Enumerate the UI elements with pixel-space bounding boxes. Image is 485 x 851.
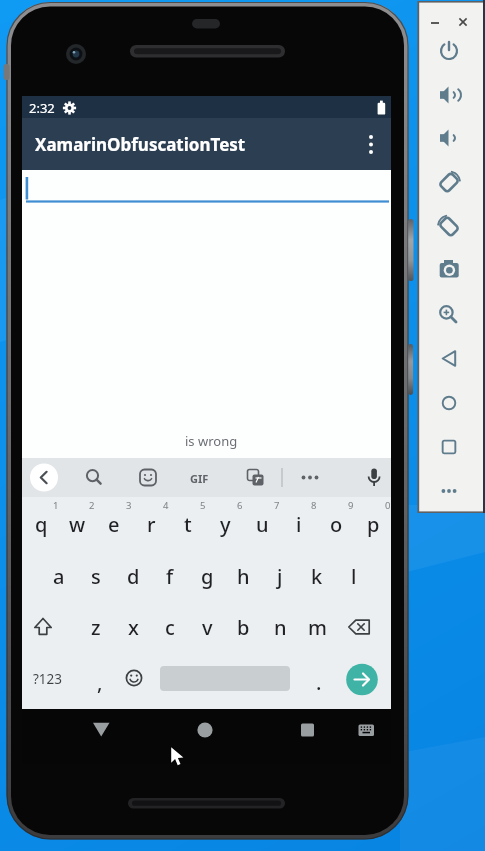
staticText: o (330, 511, 343, 538)
staticText: f (166, 563, 174, 590)
staticText: 2 (89, 499, 95, 512)
button[interactable]: w (59, 498, 95, 550)
staticText: q (35, 511, 48, 538)
button[interactable]: u (244, 498, 280, 550)
button[interactable]: y (207, 498, 243, 550)
staticText: u (256, 511, 269, 538)
button[interactable]: r (133, 498, 169, 550)
button[interactable] (345, 601, 378, 653)
button[interactable]: i (281, 498, 317, 550)
button[interactable] (118, 653, 150, 703)
button[interactable] (27, 601, 59, 653)
button[interactable] (433, 122, 465, 154)
staticText: t (184, 511, 192, 538)
button[interactable] (433, 431, 465, 463)
button[interactable]: g (189, 550, 225, 602)
staticText: r (147, 511, 156, 538)
button[interactable]: . (301, 656, 337, 708)
button[interactable]: e (96, 498, 132, 550)
button[interactable] (134, 463, 162, 491)
button[interactable]: k (299, 550, 335, 602)
button[interactable] (433, 167, 465, 199)
staticText: 9 (348, 499, 354, 512)
staticText: 4 (163, 499, 169, 512)
staticText: g (201, 563, 214, 590)
button[interactable]: t (170, 498, 206, 550)
button[interactable]: j (262, 550, 298, 602)
button[interactable] (80, 463, 108, 491)
staticText: GIF (190, 471, 209, 486)
staticText: l (351, 563, 357, 590)
button[interactable] (241, 463, 269, 491)
button[interactable] (433, 387, 465, 419)
button[interactable]: v (189, 601, 225, 653)
staticText: m (308, 614, 327, 641)
staticText: . (316, 669, 322, 696)
button[interactable] (427, 15, 443, 31)
button[interactable] (296, 463, 324, 491)
staticText: z (91, 614, 101, 641)
button[interactable] (433, 475, 465, 507)
button[interactable] (186, 463, 214, 491)
button[interactable]: s (78, 550, 114, 602)
staticText: ?123 (33, 670, 63, 688)
staticText: 1 (53, 499, 59, 512)
button[interactable] (344, 708, 388, 752)
button[interactable]: q (23, 498, 59, 550)
button[interactable] (433, 79, 465, 111)
button[interactable] (160, 653, 290, 703)
staticText: p (367, 511, 380, 538)
button[interactable] (433, 297, 465, 329)
staticText: h (237, 563, 250, 590)
button[interactable] (79, 708, 123, 752)
staticText: j (277, 563, 283, 590)
button[interactable]: n (262, 601, 298, 653)
button[interactable]: m (299, 601, 335, 653)
staticText: a (53, 563, 65, 590)
staticText: 6 (237, 499, 243, 512)
button[interactable]: z (78, 601, 114, 653)
button[interactable] (433, 35, 465, 67)
staticText: i (296, 511, 302, 538)
staticText: n (274, 614, 287, 641)
staticText: 7 (274, 499, 280, 512)
button[interactable] (22, 170, 391, 210)
staticText: y (220, 511, 231, 538)
button[interactable] (433, 254, 465, 286)
staticText: c (165, 614, 175, 641)
button[interactable]: l (336, 550, 372, 602)
button[interactable] (433, 211, 465, 243)
button[interactable] (360, 463, 388, 491)
staticText: 2:32 (29, 99, 55, 117)
button[interactable] (433, 343, 465, 375)
staticText: 0 (385, 499, 391, 512)
button[interactable] (183, 708, 227, 752)
staticText: , (97, 669, 103, 696)
staticText: b (237, 614, 250, 641)
button[interactable]: p (355, 498, 391, 550)
button[interactable]: f (152, 550, 188, 602)
staticText: 8 (311, 499, 317, 512)
staticText: is wrong (185, 432, 238, 450)
button[interactable]: a (41, 550, 77, 602)
staticText: d (127, 563, 140, 590)
button[interactable]: b (225, 601, 261, 653)
staticText: w (69, 511, 86, 538)
staticText: s (91, 563, 101, 590)
button[interactable] (455, 14, 471, 30)
staticText: e (108, 511, 120, 538)
button[interactable] (30, 463, 58, 491)
staticText: x (128, 614, 139, 641)
button[interactable] (344, 653, 380, 703)
button[interactable]: x (115, 601, 151, 653)
button[interactable]: o (318, 498, 354, 550)
button[interactable]: d (115, 550, 151, 602)
staticText: 5 (200, 499, 206, 512)
button[interactable]: h (225, 550, 261, 602)
button[interactable] (285, 708, 329, 752)
button[interactable] (355, 120, 391, 170)
button[interactable]: c (152, 601, 188, 653)
button[interactable] (27, 653, 73, 703)
staticText: v (202, 614, 213, 641)
button[interactable]: , (82, 656, 118, 708)
